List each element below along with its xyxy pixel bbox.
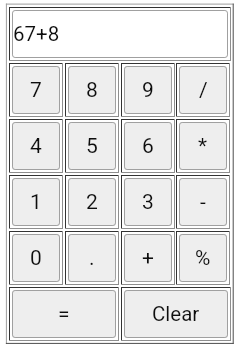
button[interactable]: Three xyxy=(121,175,175,229)
staticText: 3 xyxy=(142,190,154,215)
staticText: + xyxy=(142,246,154,271)
staticText: % xyxy=(195,246,211,271)
staticText: = xyxy=(58,302,70,327)
button[interactable]: One xyxy=(9,175,63,229)
button[interactable]: Multiply xyxy=(176,119,230,173)
staticText: . xyxy=(89,246,95,271)
staticText: 1 xyxy=(30,190,42,215)
button[interactable]: Two xyxy=(65,175,119,229)
button[interactable]: Five xyxy=(65,119,119,173)
staticText: 8 xyxy=(86,78,98,103)
staticText: 7 xyxy=(30,78,42,103)
staticText: 67+8 xyxy=(13,22,60,46)
staticText: 0 xyxy=(30,246,42,271)
staticText: 4 xyxy=(30,134,42,159)
button[interactable]: Zero xyxy=(9,231,63,285)
button[interactable]: Plus xyxy=(121,231,175,285)
button[interactable]: Equals xyxy=(9,287,119,341)
button[interactable]: Four xyxy=(9,119,63,173)
button[interactable]: Minus xyxy=(176,175,230,229)
button[interactable]: Percent xyxy=(176,231,230,285)
staticText: 5 xyxy=(86,134,98,159)
button[interactable]: Divide xyxy=(176,63,230,117)
staticText: Clear xyxy=(152,302,200,326)
button[interactable]: Six xyxy=(121,119,175,173)
staticText: 2 xyxy=(86,190,98,215)
button[interactable]: Expression 67+8 xyxy=(9,7,231,61)
staticText: - xyxy=(200,190,206,215)
button[interactable]: Clear xyxy=(121,287,231,341)
staticText: 6 xyxy=(142,134,154,159)
button[interactable]: Seven xyxy=(9,63,63,117)
button[interactable]: Eight xyxy=(65,63,119,117)
button[interactable]: Nine xyxy=(121,63,175,117)
staticText: / xyxy=(199,78,208,103)
staticText: * xyxy=(198,134,208,159)
staticText: 9 xyxy=(142,78,154,103)
button[interactable]: Decimal point xyxy=(65,231,119,285)
